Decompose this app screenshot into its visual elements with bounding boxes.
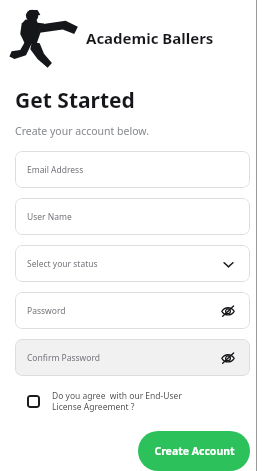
- staticText: Get Started: [15, 86, 135, 115]
- staticText: User Name: [27, 211, 72, 223]
- button[interactable]: User Name: [15, 198, 250, 235]
- button[interactable]: Do you agree with our End-User License A…: [15, 388, 250, 414]
- staticText: Email Address: [27, 164, 84, 176]
- button[interactable]: Show password: [218, 348, 238, 368]
- button[interactable]: Open status list: [218, 254, 238, 274]
- staticText: Password: [27, 305, 66, 317]
- staticText: Do you agree with our End-User License A…: [52, 390, 182, 412]
- staticText: Create Account: [154, 444, 235, 458]
- staticText: Confirm Password: [27, 352, 100, 364]
- staticText: Create your account below.: [15, 124, 149, 138]
- button[interactable]: Password: [15, 292, 250, 329]
- staticText: Select your status: [27, 258, 98, 270]
- staticText: Academic Ballers: [86, 28, 214, 48]
- button[interactable]: Create Account: [138, 431, 250, 471]
- button[interactable]: Confirm Password: [15, 339, 250, 376]
- button[interactable]: Select your status: [15, 245, 250, 282]
- button[interactable]: Email Address: [15, 151, 250, 188]
- button[interactable]: Show password: [218, 301, 238, 321]
